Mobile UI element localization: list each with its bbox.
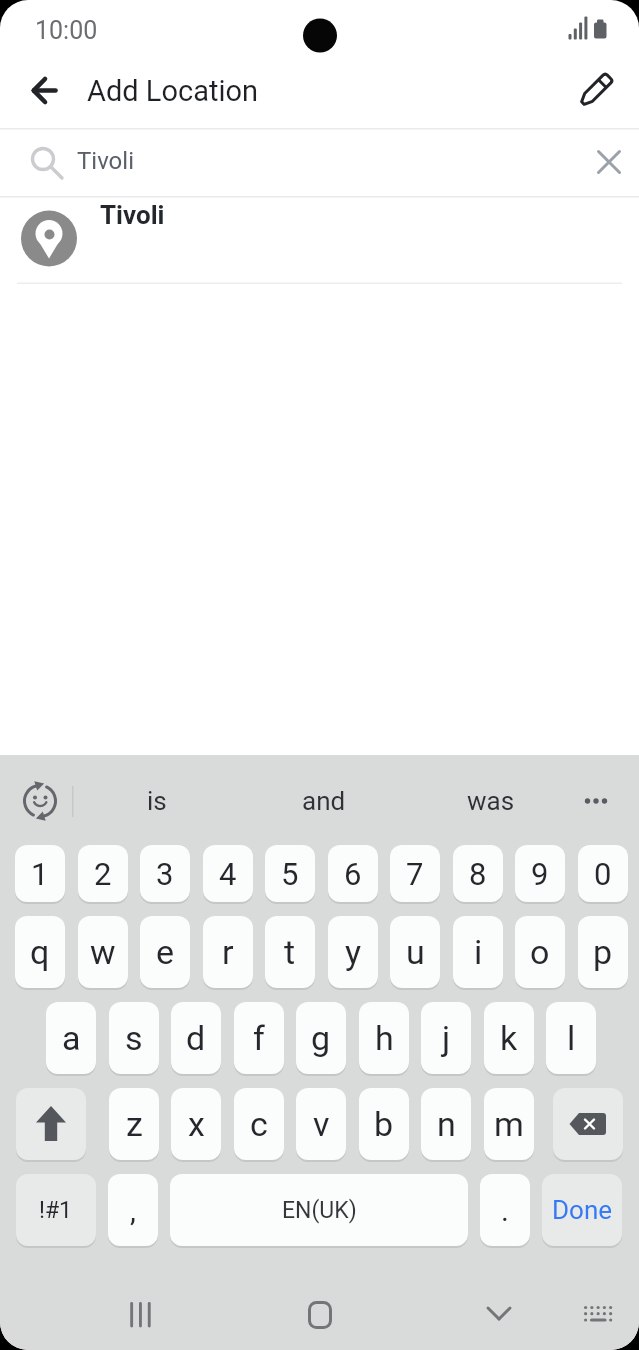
- button[interactable]: 4: [203, 845, 253, 902]
- staticText: and: [302, 786, 346, 816]
- button[interactable]: c: [234, 1088, 284, 1160]
- button[interactable]: h: [359, 1002, 409, 1074]
- button[interactable]: [20, 68, 66, 114]
- button[interactable]: t: [265, 916, 315, 988]
- staticText: Add Location: [87, 74, 259, 108]
- staticText: Done: [552, 1195, 613, 1225]
- staticText: is: [147, 786, 167, 816]
- button[interactable]: q: [15, 916, 65, 988]
- button[interactable]: [294, 1290, 346, 1342]
- button[interactable]: x: [171, 1088, 221, 1160]
- button[interactable]: 8: [453, 845, 503, 902]
- button[interactable]: [16, 1088, 86, 1160]
- staticText: a: [62, 1018, 81, 1058]
- button[interactable]: 5: [265, 845, 315, 902]
- button[interactable]: 0: [578, 845, 628, 902]
- staticText: 6: [344, 856, 362, 892]
- staticText: c: [250, 1104, 268, 1144]
- staticText: .: [501, 1193, 509, 1228]
- button[interactable]: [20, 779, 64, 823]
- button[interactable]: .: [480, 1174, 530, 1246]
- button[interactable]: EN(UK): [170, 1174, 468, 1246]
- staticText: 10:00: [35, 16, 98, 45]
- staticText: r: [222, 932, 234, 972]
- button[interactable]: v: [296, 1088, 346, 1160]
- button[interactable]: e: [140, 916, 190, 988]
- staticText: was: [467, 786, 515, 816]
- button[interactable]: b: [359, 1088, 409, 1160]
- button[interactable]: z: [109, 1088, 159, 1160]
- button[interactable]: Done: [542, 1174, 622, 1246]
- button[interactable]: o: [515, 916, 565, 988]
- staticText: p: [593, 932, 613, 972]
- button[interactable]: i: [453, 916, 503, 988]
- staticText: Tivoli: [100, 200, 165, 230]
- button[interactable]: f: [234, 1002, 284, 1074]
- staticText: n: [437, 1104, 456, 1144]
- button[interactable]: [473, 1290, 525, 1342]
- button[interactable]: [572, 1290, 624, 1342]
- staticText: 3: [156, 856, 174, 892]
- button[interactable]: u: [390, 916, 440, 988]
- staticText: b: [374, 1104, 394, 1144]
- staticText: l: [567, 1018, 576, 1058]
- staticText: 9: [531, 856, 549, 892]
- staticText: EN(UK): [282, 1197, 357, 1224]
- button[interactable]: [572, 68, 618, 114]
- button[interactable]: 1: [15, 845, 65, 902]
- staticText: q: [30, 932, 50, 972]
- button[interactable]: [553, 1088, 623, 1160]
- button[interactable]: p: [578, 916, 628, 988]
- staticText: 8: [469, 856, 487, 892]
- staticText: Tivoli: [77, 147, 134, 175]
- button[interactable]: k: [484, 1002, 534, 1074]
- button[interactable]: w: [78, 916, 128, 988]
- staticText: g: [311, 1018, 331, 1058]
- button[interactable]: 9: [515, 845, 565, 902]
- button[interactable]: 3: [140, 845, 190, 902]
- button[interactable]: !#1: [16, 1174, 96, 1246]
- staticText: s: [125, 1018, 143, 1058]
- staticText: 1: [31, 856, 49, 892]
- button[interactable]: [115, 1290, 167, 1342]
- button[interactable]: g: [296, 1002, 346, 1074]
- staticText: o: [530, 932, 550, 972]
- button[interactable]: 7: [390, 845, 440, 902]
- staticText: v: [313, 1104, 330, 1144]
- button[interactable]: ,: [108, 1174, 158, 1246]
- staticText: y: [345, 932, 362, 972]
- button[interactable]: j: [421, 1002, 471, 1074]
- staticText: u: [406, 932, 425, 972]
- staticText: j: [442, 1018, 451, 1058]
- staticText: w: [90, 932, 116, 972]
- staticText: h: [375, 1018, 394, 1058]
- button[interactable]: d: [171, 1002, 221, 1074]
- staticText: 2: [94, 856, 112, 892]
- staticText: d: [186, 1018, 206, 1058]
- staticText: 4: [219, 856, 237, 892]
- button[interactable]: [0, 129, 639, 196]
- button[interactable]: s: [109, 1002, 159, 1074]
- staticText: ,: [130, 1193, 136, 1228]
- staticText: i: [474, 932, 483, 972]
- button[interactable]: r: [203, 916, 253, 988]
- staticText: x: [188, 1104, 205, 1144]
- staticText: t: [284, 932, 296, 972]
- staticText: 0: [594, 856, 612, 892]
- button[interactable]: 6: [328, 845, 378, 902]
- staticText: e: [156, 932, 175, 972]
- button[interactable]: n: [421, 1088, 471, 1160]
- staticText: m: [494, 1104, 524, 1144]
- staticText: f: [253, 1018, 265, 1058]
- staticText: 7: [406, 856, 424, 892]
- staticText: z: [126, 1104, 143, 1144]
- button[interactable]: m: [484, 1088, 534, 1160]
- button[interactable]: y: [328, 916, 378, 988]
- button[interactable]: 2: [78, 845, 128, 902]
- staticText: 5: [281, 856, 299, 892]
- button[interactable]: [0, 198, 639, 283]
- button[interactable]: l: [546, 1002, 596, 1074]
- staticText: k: [500, 1018, 518, 1058]
- staticText: !#1: [39, 1197, 73, 1224]
- button[interactable]: a: [46, 1002, 96, 1074]
